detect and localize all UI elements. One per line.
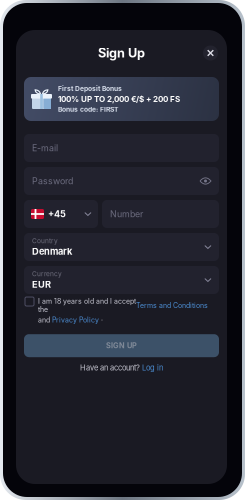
staticText: and <box>38 316 52 324</box>
button[interactable]: Privacy Policy <box>52 316 99 324</box>
staticText: Privacy Policy <box>52 316 99 324</box>
staticText: Denmark <box>32 246 72 257</box>
staticText: Number <box>110 209 143 219</box>
button[interactable]: Accept terms and conditions <box>25 297 34 306</box>
staticText: Log in <box>142 363 163 372</box>
button[interactable]: Password <box>24 167 219 195</box>
button[interactable]: Number <box>102 200 219 228</box>
button[interactable]: E-mail <box>24 134 219 162</box>
staticText: Currency <box>32 270 62 278</box>
staticText: · <box>99 316 103 324</box>
staticText: E-mail <box>32 143 58 153</box>
staticText: Country <box>32 237 58 245</box>
staticText: Sign Up <box>98 45 145 61</box>
staticText: EUR <box>32 279 51 290</box>
button[interactable]: Currency <box>24 266 219 294</box>
button[interactable]: +45 <box>24 200 98 228</box>
button[interactable]: Close <box>203 45 218 60</box>
staticText: +45 <box>48 208 66 219</box>
button[interactable]: Country <box>24 233 219 261</box>
button[interactable]: SIGN UP <box>24 334 219 357</box>
staticText: SIGN UP <box>106 341 137 350</box>
button[interactable]: Log in <box>142 363 163 372</box>
staticText: Bonus code: FIRST <box>58 105 118 113</box>
button[interactable]: Terms and Conditions <box>136 301 208 310</box>
staticText: I am 18 years old and I accept the <box>38 297 136 314</box>
staticText: Have an account? <box>80 363 142 372</box>
staticText: Terms and Conditions <box>136 301 208 310</box>
staticText: First Deposit Bonus <box>58 85 122 93</box>
staticText: Password <box>32 176 73 186</box>
staticText: 100% UP TO 2,000 €/$ + 200 FS <box>58 94 180 104</box>
